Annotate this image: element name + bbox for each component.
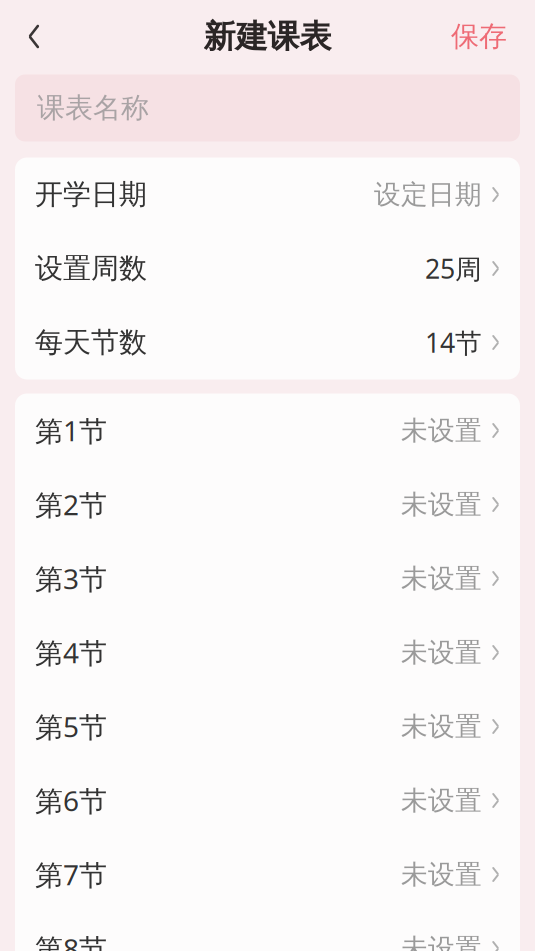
button[interactable]: 第2节 [15, 467, 520, 541]
button[interactable]: 第3节 [15, 541, 520, 615]
button[interactable]: 第1节 [15, 393, 520, 467]
staticText: 未设置 [401, 710, 482, 743]
button[interactable]: 课表名称 [15, 74, 520, 141]
staticText: 第5节 [35, 708, 107, 745]
staticText: 未设置 [401, 562, 482, 595]
staticText: 未设置 [401, 932, 482, 951]
staticText: 课表名称 [37, 91, 149, 125]
staticText: 未设置 [401, 636, 482, 669]
staticText: 第8节 [35, 930, 107, 951]
staticText: 开学日期 [35, 177, 147, 212]
button[interactable]: 第8节 [15, 911, 520, 951]
button[interactable]: Back [12, 14, 56, 58]
staticText: 第1节 [35, 412, 107, 449]
button[interactable]: 每天节数 [15, 305, 520, 379]
button[interactable]: 第7节 [15, 837, 520, 911]
button[interactable]: 第4节 [15, 615, 520, 689]
staticText: 未设置 [401, 858, 482, 891]
staticText: 保存 [451, 19, 507, 54]
staticText: 第7节 [35, 856, 107, 893]
button[interactable]: 保存 [435, 11, 523, 62]
button[interactable]: 第6节 [15, 763, 520, 837]
staticText: 第4节 [35, 634, 107, 671]
staticText: 设置周数 [35, 251, 147, 286]
staticText: 设定日期 [374, 178, 482, 211]
staticText: 第3节 [35, 560, 107, 597]
button[interactable]: 第5节 [15, 689, 520, 763]
staticText: 25周 [425, 251, 482, 286]
staticText: 第6节 [35, 782, 107, 819]
staticText: 未设置 [401, 784, 482, 817]
staticText: 新建课表 [203, 17, 331, 56]
staticText: 未设置 [401, 414, 482, 447]
staticText: 每天节数 [35, 325, 147, 360]
button[interactable]: 设置周数 [15, 231, 520, 305]
staticText: 第2节 [35, 486, 107, 523]
button[interactable]: 开学日期 [15, 157, 520, 231]
staticText: 14节 [425, 325, 482, 360]
staticText: 未设置 [401, 488, 482, 521]
